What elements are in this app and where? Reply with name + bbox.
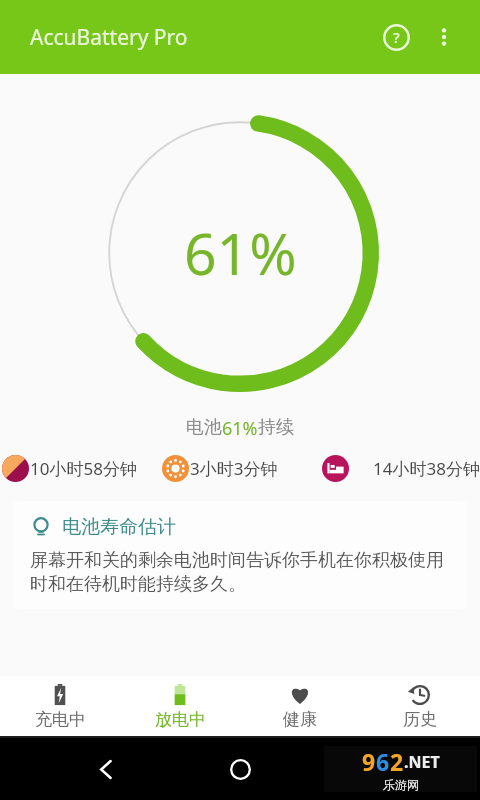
staticText: 乐游网 (383, 777, 419, 792)
staticText: 61% (222, 416, 258, 441)
staticText: 10小时58分钟 (30, 457, 160, 480)
button[interactable]: 3小时3分钟 (160, 453, 320, 483)
button[interactable]: 10小时58分钟 (0, 453, 160, 483)
button[interactable]: History (360, 676, 480, 736)
button[interactable]: Back (84, 747, 128, 791)
staticText: 3小时3分钟 (190, 457, 320, 480)
staticText: 电池寿命估计 (62, 515, 176, 539)
staticText: 61% (184, 214, 297, 292)
staticText: 6 (376, 746, 390, 777)
staticText: 放电中 (155, 709, 206, 730)
button[interactable]: Charging (0, 676, 120, 736)
button[interactable]: Discharging (120, 676, 240, 736)
staticText: .NET (404, 751, 440, 773)
staticText: 历史 (403, 709, 437, 730)
staticText: 14小时38分钟 (350, 457, 480, 480)
button[interactable]: Help (372, 13, 420, 61)
staticText: 充电中 (35, 709, 86, 730)
button[interactable]: 电池寿命估计 (14, 501, 466, 609)
staticText: AccuBattery Pro (30, 23, 188, 52)
staticText: 健康 (283, 709, 317, 730)
button[interactable]: More options (422, 15, 466, 59)
staticText: 电池 (186, 416, 222, 439)
button[interactable]: 14小时38分钟 (320, 453, 480, 483)
staticText: 2 (390, 746, 404, 777)
staticText: 9 (362, 746, 376, 777)
staticText: ? (393, 27, 400, 47)
button[interactable]: Home (218, 747, 262, 791)
staticText: 屏幕开和关的剩余电池时间告诉你手机在你积极使用时和在待机时能持续多久。 (30, 549, 450, 595)
staticText: 持续 (258, 416, 294, 439)
button[interactable]: Health (240, 676, 360, 736)
